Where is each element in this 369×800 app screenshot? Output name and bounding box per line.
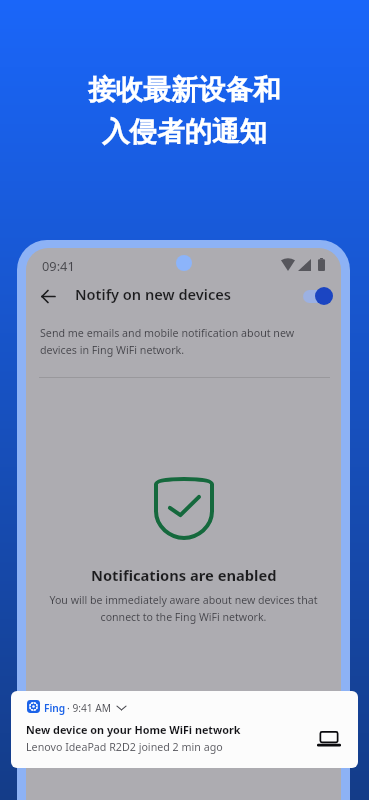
staticText: Lenovo IdeaPad R2D2 joined 2 min ago: [26, 740, 223, 755]
staticText: 09:41: [42, 257, 75, 274]
staticText: Fing: [44, 701, 66, 715]
staticText: Send me emails and mobile notification a…: [40, 326, 295, 357]
staticText: 接收最新设备和: [88, 73, 281, 108]
staticText: Notify on new devices: [75, 284, 231, 304]
button[interactable]: Back: [32, 280, 64, 312]
staticText: 入侵者的通知: [102, 115, 267, 150]
button[interactable]: Toggle notifications: [300, 281, 336, 311]
staticText: · 9:41 AM: [67, 701, 111, 715]
staticText: Notifications are enabled: [91, 565, 277, 585]
button[interactable]: Fing: [11, 691, 358, 768]
staticText: New device on your Home WiFi network: [26, 722, 241, 737]
staticText: You will be immediately aware about new …: [49, 593, 318, 624]
